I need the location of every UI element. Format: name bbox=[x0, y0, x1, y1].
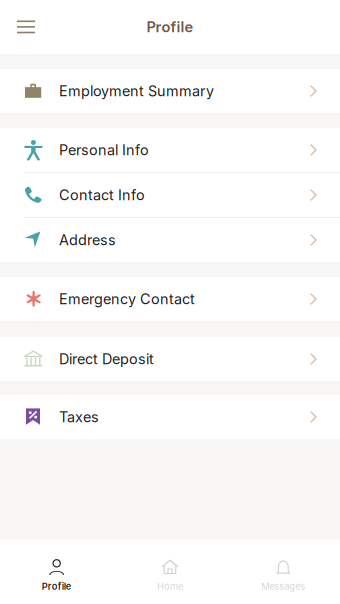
button[interactable]: Personal Info bbox=[0, 128, 340, 172]
button[interactable]: Profile bbox=[0, 540, 113, 604]
button[interactable]: Direct Deposit bbox=[0, 337, 340, 381]
staticText: Emergency Contact bbox=[59, 290, 195, 308]
staticText: Home bbox=[157, 581, 183, 592]
button[interactable]: Messages bbox=[227, 540, 340, 604]
button[interactable]: Address bbox=[0, 218, 340, 262]
button[interactable]: Emergency Contact bbox=[0, 277, 340, 321]
button[interactable]: Taxes bbox=[0, 395, 340, 439]
staticText: Address bbox=[59, 231, 116, 249]
button[interactable]: Employment Summary bbox=[0, 69, 340, 113]
button[interactable]: Home bbox=[113, 540, 227, 604]
staticText: Employment Summary bbox=[59, 82, 214, 100]
staticText: Direct Deposit bbox=[59, 350, 154, 368]
staticText: Messages bbox=[261, 581, 305, 592]
button[interactable]: Contact Info bbox=[0, 173, 340, 217]
staticText: Contact Info bbox=[59, 186, 145, 204]
staticText: Profile bbox=[146, 18, 193, 36]
button[interactable]: Menu bbox=[0, 6, 49, 47]
staticText: Personal Info bbox=[59, 141, 149, 159]
staticText: Taxes bbox=[59, 408, 99, 426]
staticText: Profile bbox=[42, 581, 72, 592]
